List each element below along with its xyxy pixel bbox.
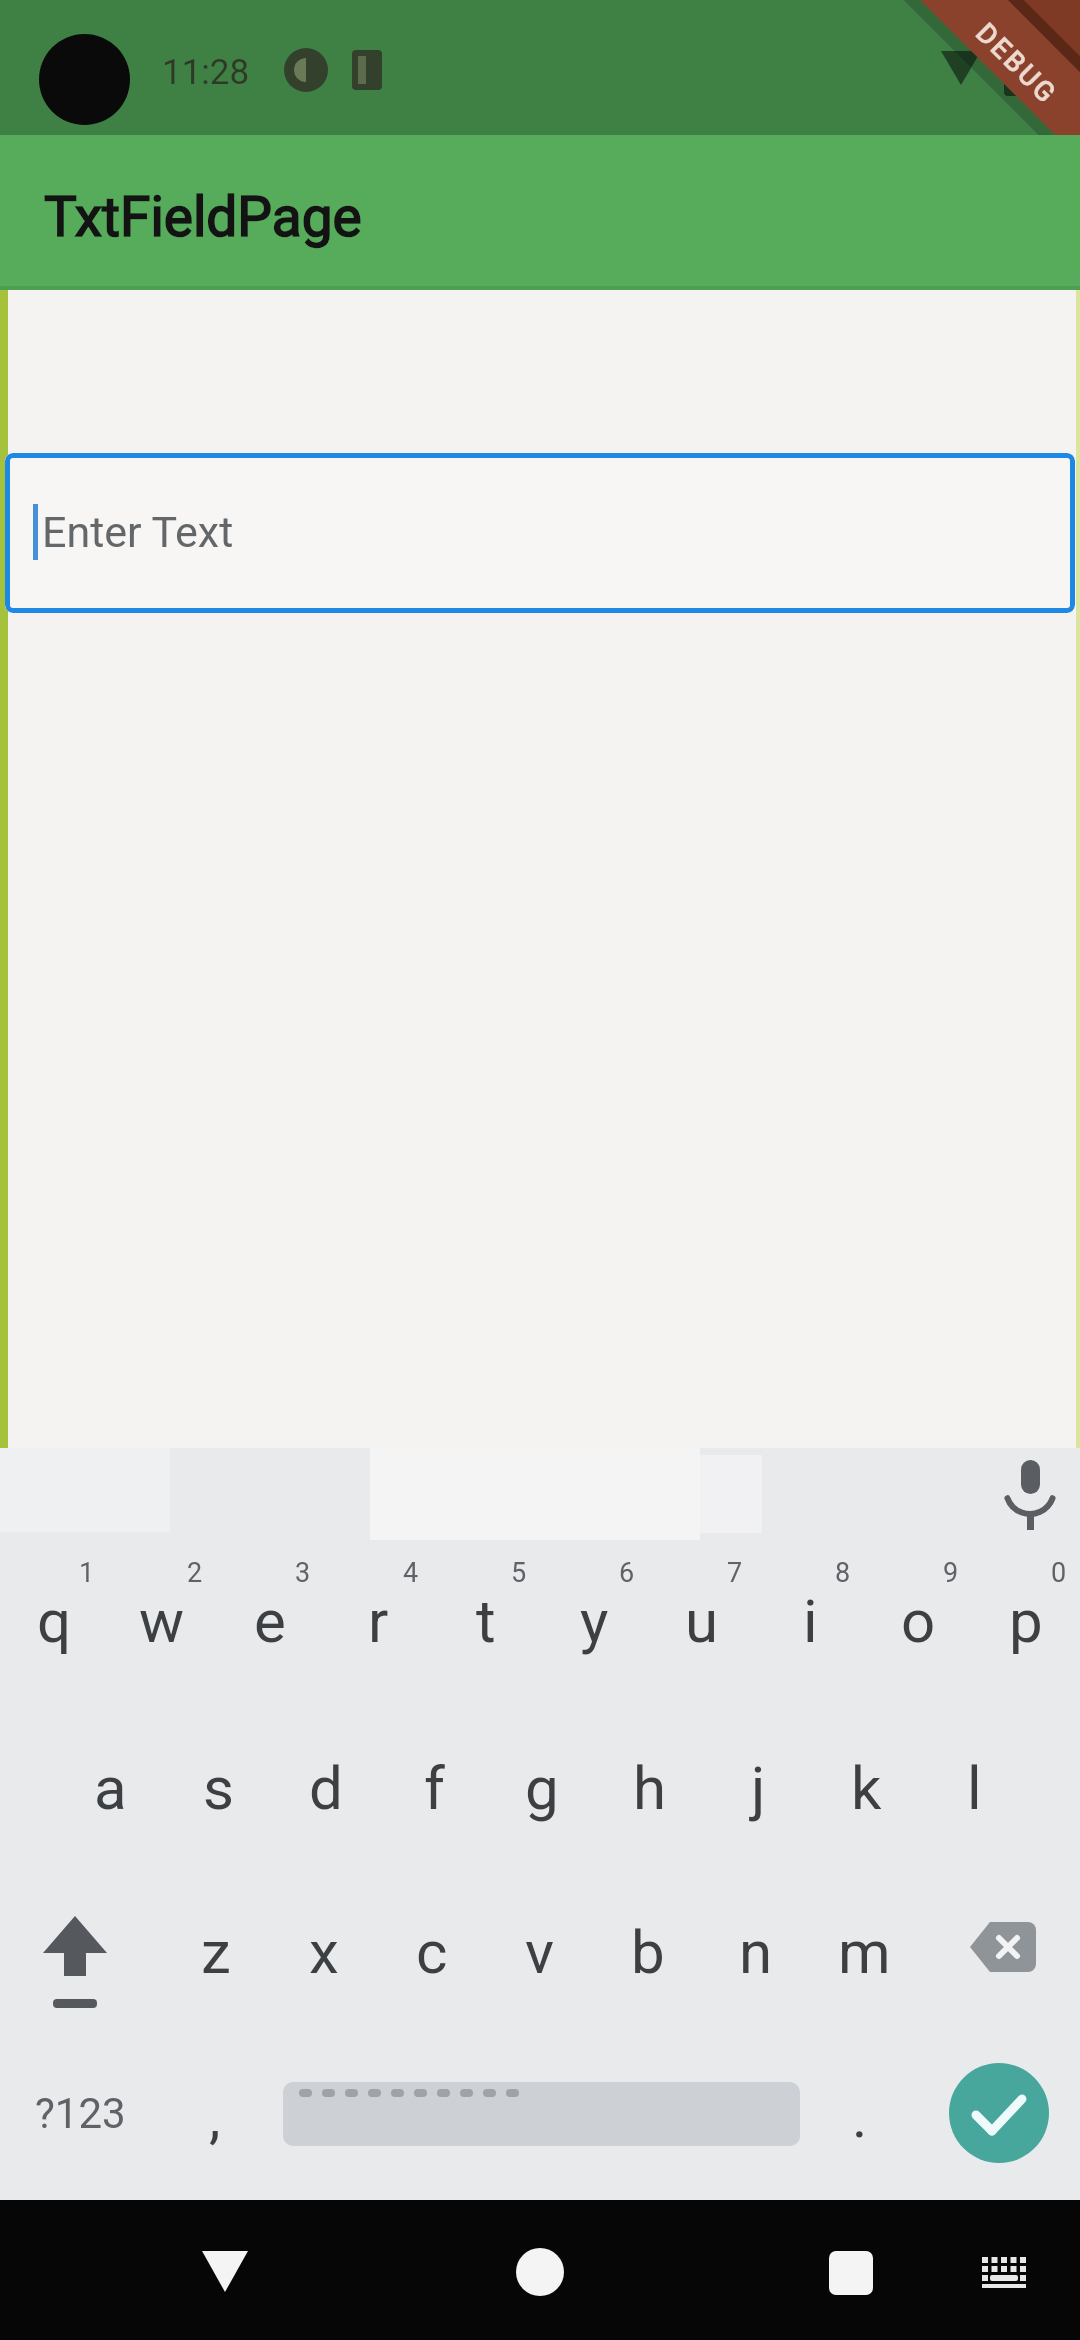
staticText: 4 (403, 1557, 419, 1589)
staticText: v (525, 1917, 555, 1987)
staticText: 8 (835, 1557, 851, 1589)
button[interactable]: u (648, 1556, 756, 1686)
staticText: k (851, 1753, 882, 1823)
button[interactable]: a (56, 1723, 164, 1853)
staticText: f (424, 1753, 445, 1823)
staticText: t (476, 1586, 496, 1656)
staticText: s (203, 1753, 234, 1823)
button[interactable]: 2 (175, 1553, 215, 1593)
button[interactable]: e (216, 1556, 324, 1686)
staticText: y (580, 1586, 609, 1656)
button[interactable] (949, 2063, 1049, 2163)
button[interactable] (201, 2250, 249, 2294)
staticText: d (309, 1753, 343, 1823)
button[interactable]: p (972, 1556, 1080, 1686)
staticText: 6 (619, 1557, 635, 1589)
button[interactable]: h (596, 1723, 704, 1853)
staticText: TxtFieldPage (44, 185, 362, 249)
button[interactable]: s (164, 1723, 272, 1853)
staticText: ?123 (35, 2089, 126, 2138)
staticText: 2 (187, 1557, 203, 1589)
staticText: w (139, 1586, 185, 1656)
button[interactable]: o (864, 1556, 972, 1686)
button[interactable] (516, 2248, 564, 2296)
button[interactable]: m (810, 1887, 918, 2017)
button[interactable]: 6 (607, 1553, 647, 1593)
button[interactable]: 8 (823, 1553, 863, 1593)
staticText: z (201, 1917, 231, 1987)
staticText: g (525, 1753, 559, 1823)
button[interactable]: 1 (67, 1553, 107, 1593)
staticText: DEBUG (970, 17, 1064, 111)
button[interactable]: i (756, 1556, 864, 1686)
button[interactable]: , (170, 2062, 260, 2172)
button[interactable] (829, 2251, 873, 2295)
staticText: 1 (79, 1557, 95, 1589)
staticText: p (1009, 1586, 1043, 1656)
button[interactable]: 5 (499, 1553, 539, 1593)
button[interactable]: v (486, 1887, 594, 2017)
button[interactable]: 9 (931, 1553, 971, 1593)
button[interactable]: j (704, 1723, 812, 1853)
button[interactable]: 7 (715, 1553, 755, 1593)
staticText: c (416, 1917, 448, 1987)
staticText: i (803, 1586, 818, 1656)
button[interactable]: 0 (1039, 1553, 1079, 1593)
button[interactable]: b (594, 1887, 702, 2017)
staticText: 7 (727, 1557, 743, 1589)
staticText: o (901, 1586, 936, 1656)
button[interactable]: n (702, 1887, 810, 2017)
staticText: q (37, 1586, 72, 1656)
button[interactable] (283, 2082, 800, 2146)
button[interactable] (968, 1919, 1042, 1981)
button[interactable]: f (380, 1723, 488, 1853)
button[interactable]: l (920, 1723, 1028, 1853)
button[interactable]: 3 (283, 1553, 323, 1593)
button[interactable]: t (432, 1556, 540, 1686)
button[interactable]: Enter Text (5, 453, 1075, 613)
staticText: e (254, 1586, 286, 1656)
staticText: h (633, 1753, 667, 1823)
staticText: 0 (1051, 1557, 1067, 1589)
staticText: 9 (943, 1557, 959, 1589)
staticText: r (368, 1586, 389, 1656)
staticText: l (967, 1753, 982, 1823)
button[interactable]: c (378, 1887, 486, 2017)
button[interactable]: d (272, 1723, 380, 1853)
staticText: a (94, 1753, 127, 1823)
button[interactable]: 4 (391, 1553, 431, 1593)
button[interactable]: y (540, 1556, 648, 1686)
button[interactable] (40, 1916, 110, 2016)
button[interactable]: z (162, 1887, 270, 2017)
button[interactable]: ?123 (5, 2058, 155, 2168)
staticText: x (309, 1917, 339, 1987)
staticText: j (751, 1753, 766, 1823)
staticText: 11:28 (162, 52, 250, 93)
button[interactable]: k (812, 1723, 920, 1853)
button[interactable] (981, 2256, 1029, 2292)
staticText: n (739, 1917, 773, 1987)
staticText: , (209, 2083, 221, 2151)
staticText: b (631, 1917, 665, 1987)
staticText: 5 (511, 1557, 527, 1589)
button[interactable] (1000, 1458, 1060, 1534)
staticText: u (685, 1586, 719, 1656)
staticText: m (838, 1917, 891, 1987)
button[interactable]: w (108, 1556, 216, 1686)
button[interactable]: r (324, 1556, 432, 1686)
staticText: 3 (295, 1557, 311, 1589)
button[interactable]: q (0, 1556, 108, 1686)
button[interactable]: x (270, 1887, 378, 2017)
button[interactable]: g (488, 1723, 596, 1853)
button[interactable]: . (815, 2062, 905, 2172)
staticText: Enter Text (42, 507, 234, 557)
staticText: . (852, 2083, 868, 2151)
